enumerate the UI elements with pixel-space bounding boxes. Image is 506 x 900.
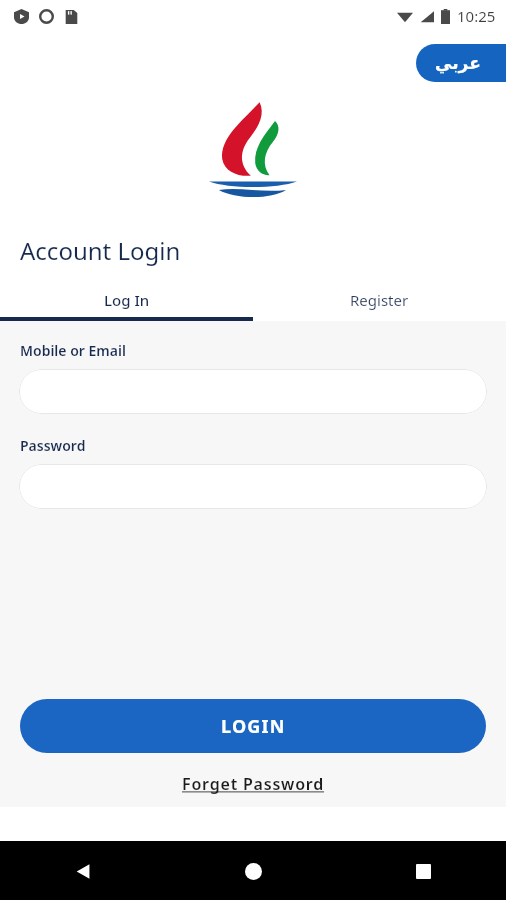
button[interactable]: Back	[60, 848, 106, 894]
staticText: Mobile or Email	[20, 341, 126, 360]
button[interactable]: Log In	[0, 283, 253, 317]
button[interactable]: عربي	[416, 44, 506, 82]
staticText: Log In	[104, 290, 150, 310]
button[interactable]	[19, 464, 487, 509]
staticText: Register	[350, 290, 409, 310]
staticText: عربي	[435, 53, 481, 73]
staticText: Password	[20, 436, 86, 455]
button[interactable]: Home	[230, 848, 276, 894]
staticText: Account Login	[20, 234, 181, 267]
staticText: 10:25	[457, 6, 496, 26]
button[interactable]: Recent apps	[400, 848, 446, 894]
staticText: LOGIN	[221, 714, 286, 739]
button[interactable]: LOGIN	[20, 699, 486, 753]
button[interactable]: Forget Password	[174, 771, 333, 797]
staticText: Forget Password	[182, 773, 325, 795]
button[interactable]: Register	[253, 283, 506, 317]
button[interactable]	[19, 369, 487, 414]
